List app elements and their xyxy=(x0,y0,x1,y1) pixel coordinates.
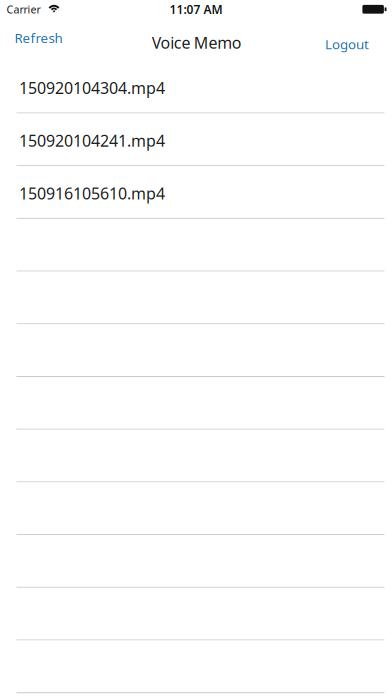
button[interactable]: 150920104304.mp4 xyxy=(0,61,392,113)
button[interactable]: 150920104241.mp4 xyxy=(0,113,392,166)
staticText: Voice Memo xyxy=(152,32,242,53)
button[interactable]: Refresh xyxy=(0,20,74,56)
staticText: 150920104304.mp4 xyxy=(19,77,165,98)
staticText: Carrier xyxy=(6,2,40,16)
staticText: 150920104241.mp4 xyxy=(19,130,165,151)
staticText: Logout xyxy=(325,35,369,53)
button[interactable]: Logout xyxy=(313,26,392,62)
staticText: 150916105610.mp4 xyxy=(19,183,165,204)
staticText: 11:07 AM xyxy=(169,1,222,17)
staticText: Refresh xyxy=(14,29,62,47)
button[interactable]: 150916105610.mp4 xyxy=(0,166,392,219)
